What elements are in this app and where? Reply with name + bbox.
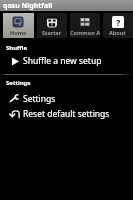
staticText: Starter — [42, 29, 62, 36]
staticText: Settings — [6, 79, 31, 87]
button[interactable]: Reset default settings — [0, 106, 133, 121]
staticText: Home — [10, 29, 27, 36]
staticText: ? — [116, 16, 121, 28]
button[interactable]: Settings — [0, 91, 133, 106]
staticText: Common A — [70, 29, 100, 36]
button[interactable]: Common A — [67, 11, 100, 40]
staticText: About — [109, 29, 126, 36]
staticText: qasu Nightfall — [3, 1, 53, 11]
staticText: Settings — [23, 93, 56, 105]
button[interactable]: Home — [0, 11, 34, 40]
button[interactable]: ? — [100, 11, 133, 40]
button[interactable]: Starter — [34, 11, 67, 40]
staticText: Shuffle — [6, 44, 28, 52]
staticText: Reset default settings — [23, 108, 110, 120]
staticText: Shuffle a new setup — [23, 55, 102, 67]
button[interactable]: Shuffle a new setup — [0, 54, 133, 68]
